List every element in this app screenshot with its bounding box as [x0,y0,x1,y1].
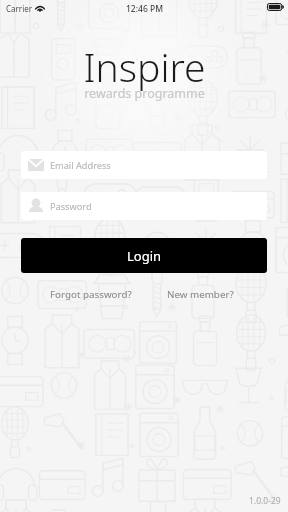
staticText: Inspire [83,40,206,93]
button[interactable]: Forgot password? [50,284,132,304]
staticText: Carrier [6,3,33,14]
staticText: rewards programme [84,85,205,102]
staticText: Forgot password? [50,288,132,301]
button[interactable]: Login [21,238,267,273]
staticText: Password [50,200,92,213]
staticText: Email Address [50,159,111,172]
staticText: Login [127,247,162,265]
button[interactable]: New member? [167,284,234,304]
button[interactable]: Password [21,192,267,220]
staticText: New member? [167,288,234,301]
button[interactable]: Email Address [21,151,267,179]
staticText: 12:46 PM [126,3,163,15]
staticText: 1.0.0-29 [249,495,281,507]
